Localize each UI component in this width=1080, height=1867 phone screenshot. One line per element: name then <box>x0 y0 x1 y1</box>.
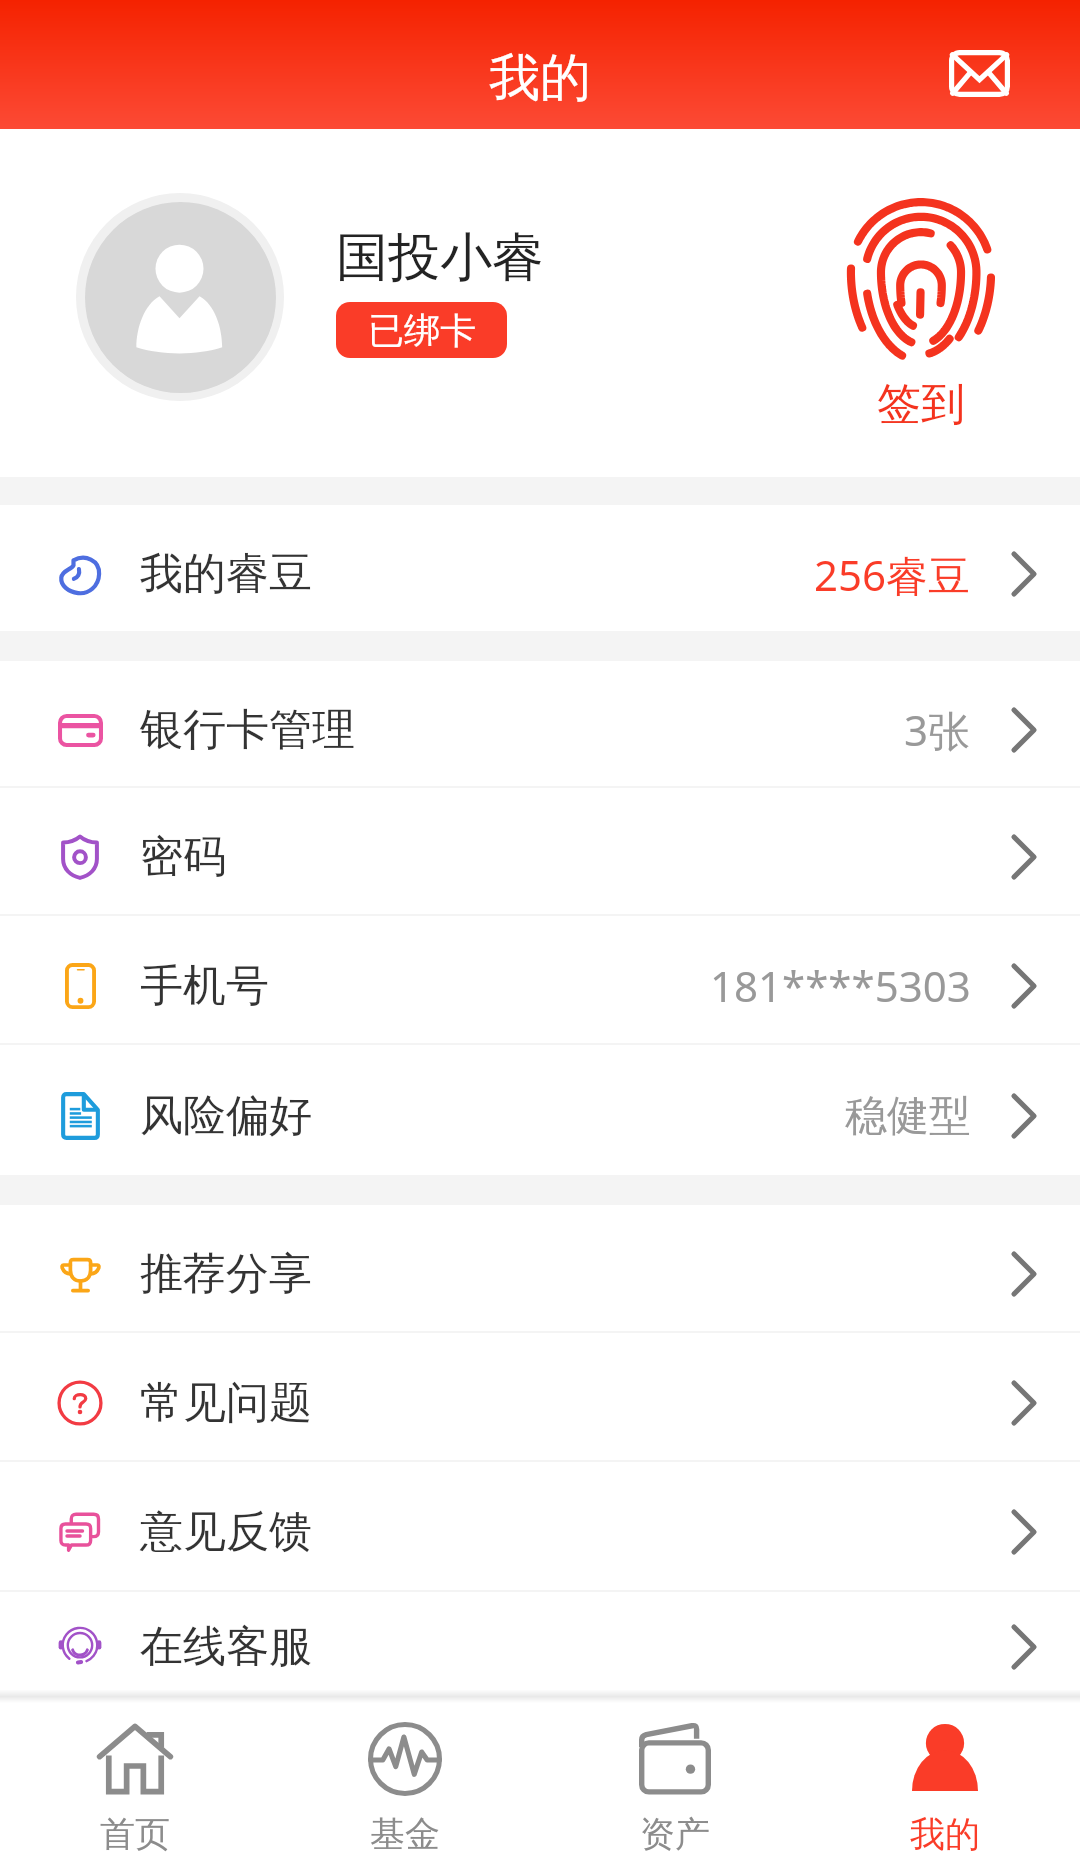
button[interactable]: 意见反馈 <box>0 1462 1080 1592</box>
staticText: 国投小睿 <box>336 225 544 291</box>
staticText: 我的睿豆 <box>140 547 312 601</box>
staticText: 已绑卡 <box>368 308 476 353</box>
staticText: 我的 <box>489 46 591 110</box>
staticText: 手机号 <box>140 959 269 1013</box>
staticText: 256睿豆 <box>814 546 971 603</box>
button[interactable]: 签到 <box>844 216 998 432</box>
staticText: 签到 <box>877 377 965 432</box>
staticText: 3张 <box>904 701 971 758</box>
staticText: 意见反馈 <box>140 1505 312 1559</box>
staticText: 我的 <box>910 1812 980 1856</box>
staticText: 常见问题 <box>140 1376 312 1430</box>
staticText: 基金 <box>370 1812 440 1856</box>
staticText: 资产 <box>640 1812 710 1856</box>
staticText: 银行卡管理 <box>140 703 355 757</box>
button[interactable]: 已绑卡 <box>336 302 507 358</box>
button[interactable]: 资产 <box>540 1703 810 1867</box>
button[interactable]: Avatar <box>76 193 284 401</box>
button[interactable]: 首页 <box>0 1703 270 1867</box>
button[interactable]: 基金 <box>270 1703 540 1867</box>
staticText: 风险偏好 <box>140 1089 312 1143</box>
staticText: 推荐分享 <box>140 1247 312 1301</box>
button[interactable]: 手机号 <box>0 916 1080 1045</box>
button[interactable]: 我的 <box>810 1703 1080 1867</box>
staticText: 密码 <box>140 830 226 884</box>
button[interactable]: 我的睿豆 <box>0 505 1080 631</box>
button[interactable]: 密码 <box>0 788 1080 916</box>
button[interactable]: 风险偏好 <box>0 1045 1080 1175</box>
staticText: 181****5303 <box>710 957 971 1014</box>
button[interactable]: 银行卡管理 <box>0 661 1080 788</box>
button[interactable]: 在线客服 <box>0 1592 1080 1690</box>
staticText: 稳健型 <box>845 1090 971 1143</box>
button[interactable]: 推荐分享 <box>0 1205 1080 1333</box>
staticText: 首页 <box>100 1812 170 1856</box>
button[interactable]: 常见问题 <box>0 1333 1080 1462</box>
staticText: 在线客服 <box>140 1620 312 1674</box>
button[interactable]: Messages <box>937 37 1021 109</box>
